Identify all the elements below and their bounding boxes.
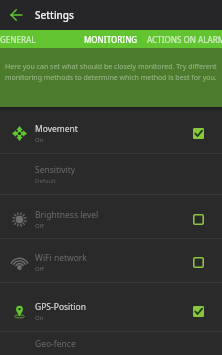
- button[interactable]: Enabled: [186, 110, 211, 157]
- button[interactable]: Disabled: [186, 197, 211, 241]
- button[interactable]: Movement: [0, 107, 222, 154]
- button[interactable]: ACTIONS ON ALARM: [147, 30, 222, 48]
- button[interactable]: Brightness level: [0, 195, 222, 239]
- staticText: GPS-Position: [35, 301, 86, 313]
- button[interactable]: Disabled: [186, 240, 211, 284]
- staticText: Geo-fence: [35, 338, 76, 350]
- staticText: Here you can set what should be closely …: [5, 62, 219, 82]
- button[interactable]: Back: [2, 0, 30, 30]
- staticText: Brightness level: [35, 209, 99, 221]
- staticText: Default: [35, 177, 56, 185]
- button[interactable]: GENERAL: [0, 30, 50, 48]
- staticText: On: [35, 136, 44, 144]
- staticText: ACTIONS ON ALARM: [147, 34, 222, 45]
- button[interactable]: Sensitivity: [0, 154, 222, 195]
- staticText: On: [35, 314, 44, 322]
- staticText: Off: [35, 265, 44, 273]
- button[interactable]: Geo-fence: [0, 332, 222, 355]
- button[interactable]: Enabled: [186, 287, 211, 336]
- staticText: Settings: [35, 8, 74, 22]
- button[interactable]: GPS-Position: [0, 283, 222, 332]
- staticText: GENERAL: [0, 34, 36, 45]
- staticText: WiFi network: [35, 252, 87, 264]
- staticText: Movement: [35, 123, 78, 135]
- button[interactable]: WiFi network: [0, 239, 222, 283]
- staticText: Sensitivity: [35, 164, 76, 176]
- staticText: Off: [35, 222, 44, 230]
- button[interactable]: MONITORING: [78, 30, 144, 48]
- staticText: MONITORING: [84, 34, 138, 45]
